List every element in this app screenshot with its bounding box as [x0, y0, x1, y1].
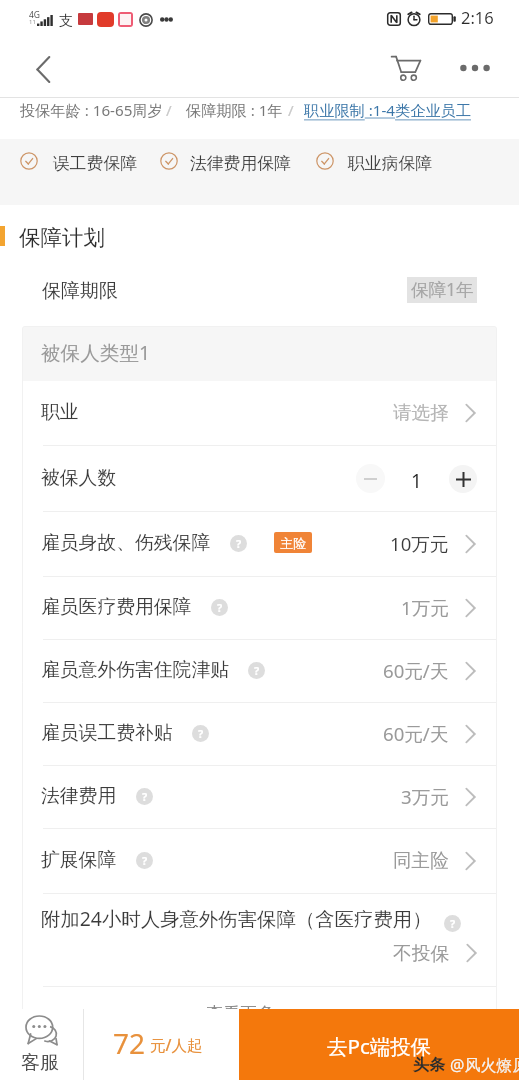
staticText: 职业病保障: [348, 153, 432, 174]
staticText: 1万元: [401, 595, 449, 620]
button[interactable]: 客服: [0, 1009, 83, 1080]
staticText: 同主险: [393, 849, 449, 872]
staticText: 头条: [413, 1055, 445, 1075]
staticText: 保障期限 : 1年: [186, 100, 283, 121]
staticText: 扩展保障: [41, 848, 117, 872]
button[interactable]: 雇员身故、伤残保障: [22, 512, 497, 577]
staticText: 附加24小时人身意外伤害保障（含医疗费用）: [41, 905, 432, 931]
staticText: 雇员医疗费用保障: [41, 595, 192, 619]
button[interactable]: 72: [84, 1009, 239, 1080]
button[interactable]: 保障期限: [42, 279, 118, 303]
staticText: 11: [29, 18, 36, 26]
button[interactable]: 去Pc端投保: [239, 1009, 519, 1080]
staticText: 60元/天: [383, 721, 449, 746]
staticText: 雇员意外伤害住院津贴: [41, 658, 229, 682]
staticText: 被保人类型1: [41, 339, 151, 366]
button[interactable]: 法律费用: [22, 766, 497, 829]
staticText: ?: [254, 663, 260, 678]
staticText: ?: [217, 600, 223, 615]
staticText: 1: [411, 468, 422, 494]
button[interactable]: 职业: [22, 381, 497, 446]
button[interactable]: 保障1年: [407, 277, 477, 303]
staticText: 60元/天: [383, 658, 449, 683]
staticText: 请选择: [393, 401, 449, 424]
staticText: 查看更多: [206, 1003, 274, 1024]
staticText: 72: [113, 1024, 146, 1062]
staticText: 法律费用: [41, 784, 117, 808]
button[interactable]: Increase: [449, 465, 477, 493]
staticText: 主险: [280, 535, 306, 551]
button[interactable]: 附加24小时人身意外伤害保障（含医疗费用）: [22, 894, 497, 987]
staticText: /: [166, 100, 172, 121]
staticText: ?: [236, 536, 242, 551]
staticText: 雇员误工费补贴: [41, 721, 173, 745]
button[interactable]: Back: [21, 47, 65, 91]
staticText: 保障计划: [19, 224, 105, 251]
button[interactable]: 雇员误工费补贴: [22, 703, 497, 766]
button[interactable]: 雇员医疗费用保障: [22, 577, 497, 640]
staticText: 元/人起: [150, 1034, 203, 1055]
staticText: ?: [142, 853, 148, 868]
button[interactable]: 查看更多: [22, 987, 497, 1039]
staticText: 法律费用保障: [190, 153, 291, 174]
staticText: 投保年龄 : 16-65周岁: [20, 100, 163, 121]
button[interactable]: 职业限制 :1-4类企业员工: [304, 100, 471, 121]
staticText: 3万元: [401, 784, 449, 809]
staticText: 2:16: [461, 6, 494, 28]
staticText: 支: [59, 12, 73, 30]
staticText: 客服: [21, 1051, 59, 1075]
button[interactable]: Decrease: [356, 464, 385, 493]
button[interactable]: Shopping cart: [384, 45, 428, 89]
staticText: 去Pc端投保: [327, 1032, 432, 1060]
staticText: 保障1年: [411, 277, 474, 301]
staticText: 4G: [29, 9, 41, 21]
staticText: 雇员身故、伤残保障: [41, 531, 211, 555]
staticText: 误工费保障: [53, 153, 137, 174]
staticText: ?: [142, 789, 148, 804]
staticText: 职业: [41, 400, 79, 424]
staticText: ?: [198, 726, 204, 741]
staticText: /: [288, 100, 294, 121]
staticText: 被保人数: [41, 466, 117, 490]
button[interactable]: 扩展保障: [22, 829, 497, 894]
button[interactable]: 雇员意外伤害住院津贴: [22, 640, 497, 703]
staticText: 不投保: [393, 942, 450, 966]
staticText: ?: [450, 916, 456, 931]
staticText: @风火燎原: [450, 1054, 519, 1076]
button[interactable]: More options: [453, 46, 497, 90]
staticText: 10万元: [390, 531, 449, 556]
